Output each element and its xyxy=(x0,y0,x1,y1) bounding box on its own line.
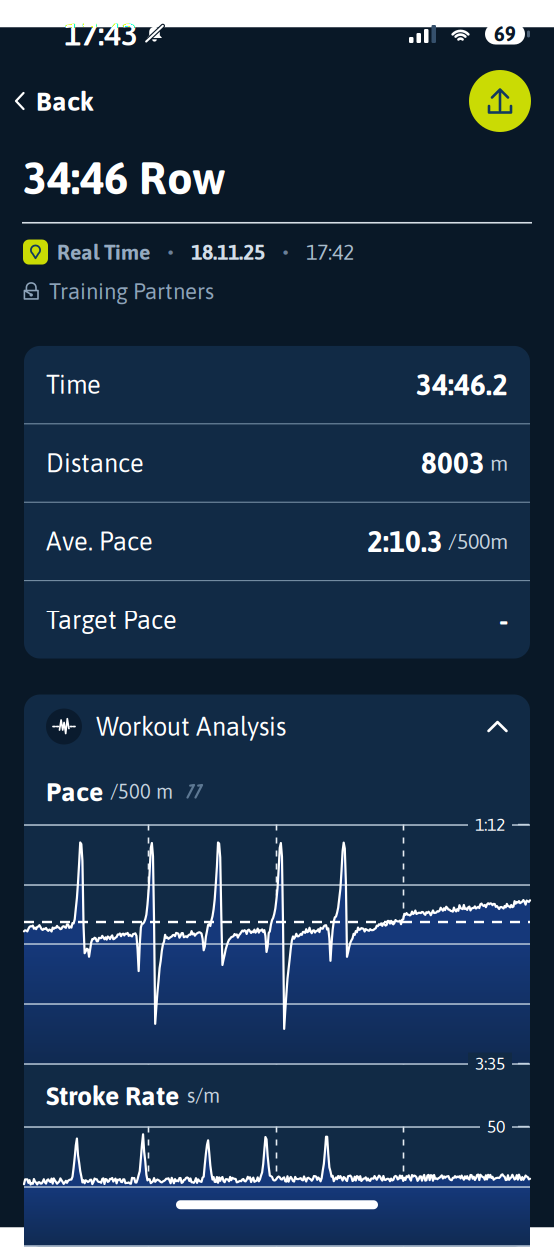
staticText: Stroke Rate xyxy=(46,1080,179,1111)
staticText: 34:46.2 xyxy=(416,368,508,401)
staticText: s/m xyxy=(187,1084,220,1107)
staticText: Real Time xyxy=(57,240,150,264)
staticText: m xyxy=(490,451,508,475)
staticText: 3:35 xyxy=(475,1053,505,1074)
staticText: Training Partners xyxy=(49,279,214,304)
button[interactable]: Back xyxy=(0,74,108,128)
staticText: 8003 xyxy=(421,446,485,480)
staticText: 18.11.25 xyxy=(191,240,265,264)
staticText: Target Pace xyxy=(46,605,177,634)
staticText: Back xyxy=(36,86,94,116)
staticText: Workout Analysis xyxy=(96,712,286,741)
staticText: 2:10.3 xyxy=(367,525,443,558)
staticText: /500m xyxy=(448,529,508,554)
staticText: Pace xyxy=(46,776,103,807)
staticText: • xyxy=(282,240,289,264)
button[interactable]: Share xyxy=(469,70,531,132)
staticText: • xyxy=(167,240,174,264)
staticText: Distance xyxy=(46,448,144,477)
staticText: 17:43 xyxy=(64,16,138,52)
staticText: 34:46 Row xyxy=(23,152,226,204)
staticText: 17:42 xyxy=(306,240,354,264)
staticText: 50 xyxy=(487,1116,505,1137)
staticText: /500 m xyxy=(110,780,173,803)
staticText: - xyxy=(499,603,508,637)
staticText: 69 xyxy=(494,22,516,45)
button[interactable]: Workout Analysis xyxy=(24,694,530,758)
staticText: 1:12 xyxy=(475,814,505,835)
staticText: Time xyxy=(46,370,101,399)
staticText: Ave. Pace xyxy=(46,527,153,556)
